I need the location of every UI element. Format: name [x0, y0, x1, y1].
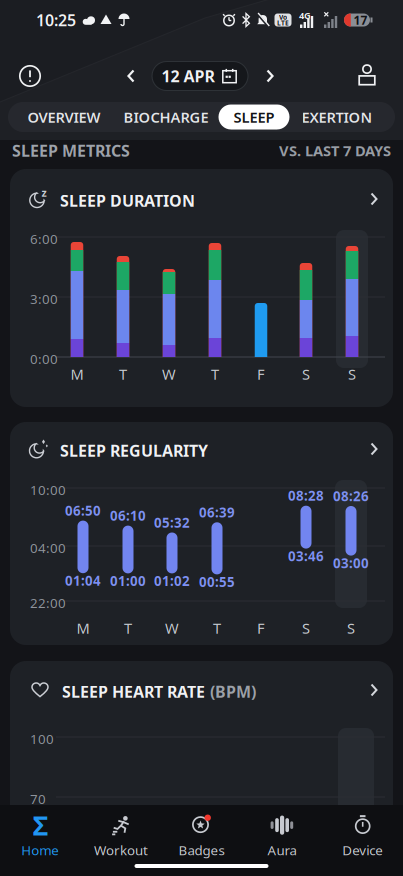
- staticText: Badges: [178, 841, 224, 859]
- staticText: T: [211, 364, 219, 384]
- staticText: SLEEP: [233, 107, 274, 127]
- staticText: 08:28: [288, 487, 324, 504]
- staticText: 22:00: [30, 594, 66, 612]
- staticText: 01:04: [65, 572, 101, 589]
- button[interactable]: Σ: [0, 807, 81, 865]
- staticText: M: [70, 364, 83, 384]
- staticText: 08:26: [333, 487, 369, 505]
- staticText: EXERTION: [301, 107, 372, 127]
- button[interactable]: Workout: [81, 807, 161, 865]
- staticText: VS. LAST 7 DAYS: [279, 141, 391, 160]
- button[interactable]: BIOCHARGE: [115, 102, 217, 132]
- staticText: (BPM): [210, 681, 256, 702]
- staticText: LTE: [277, 18, 289, 27]
- staticText: 03:46: [288, 547, 324, 565]
- staticText: 10:25: [36, 9, 76, 31]
- staticText: SLEEP METRICS: [12, 140, 130, 161]
- button[interactable]: Device: [322, 807, 403, 865]
- staticText: 0:00: [30, 350, 58, 368]
- staticText: 05:32: [154, 514, 190, 531]
- staticText: Device: [342, 841, 383, 859]
- staticText: 70: [30, 790, 46, 808]
- staticText: F: [257, 364, 265, 384]
- staticText: Σ: [33, 807, 48, 843]
- button[interactable]: SLEEP: [218, 104, 289, 129]
- staticText: S: [302, 618, 310, 638]
- button[interactable]: SLEEP REGULARITY: [10, 422, 393, 645]
- button[interactable]: z: [10, 169, 393, 407]
- button[interactable]: Badges: [161, 807, 242, 865]
- staticText: OVERVIEW: [27, 107, 100, 127]
- staticText: T: [119, 364, 127, 384]
- staticText: S: [348, 364, 356, 384]
- staticText: 00:55: [199, 573, 235, 591]
- button[interactable]: 12 APR: [152, 61, 248, 90]
- staticText: Workout: [94, 841, 148, 859]
- staticText: SLEEP DURATION: [60, 190, 195, 211]
- staticText: SLEEP REGULARITY: [60, 440, 208, 461]
- staticText: Home: [21, 841, 59, 859]
- button[interactable]: EXERTION: [289, 102, 385, 132]
- staticText: 4G: [299, 9, 311, 22]
- button[interactable]: Profile: [357, 64, 377, 85]
- staticText: S: [347, 618, 355, 638]
- staticText: 10:00: [30, 481, 66, 499]
- staticText: F: [257, 618, 265, 638]
- staticText: W: [165, 618, 179, 638]
- button[interactable]: SLEEP HEART RATE: [10, 661, 393, 876]
- staticText: BIOCHARGE: [123, 107, 208, 127]
- button[interactable]: Aura: [242, 807, 322, 865]
- staticText: M: [76, 618, 89, 638]
- button[interactable]: OVERVIEW: [14, 102, 114, 132]
- staticText: 06:10: [110, 507, 146, 524]
- staticText: 06:39: [199, 503, 235, 521]
- button[interactable]: Next day: [258, 64, 282, 88]
- staticText: 01:02: [154, 572, 190, 590]
- button[interactable]: Alerts: [19, 65, 41, 87]
- staticText: 100: [30, 730, 54, 748]
- staticText: 06:50: [65, 502, 101, 519]
- button[interactable]: Previous day: [119, 64, 143, 88]
- staticText: 3:00: [30, 290, 58, 308]
- staticText: S: [302, 364, 310, 384]
- staticText: Aura: [268, 841, 297, 859]
- staticText: 6:00: [30, 230, 58, 248]
- staticText: SLEEP HEART RATE: [62, 681, 205, 702]
- staticText: W: [162, 364, 176, 384]
- staticText: T: [213, 618, 221, 638]
- staticText: 01:00: [110, 572, 146, 590]
- staticText: 03:00: [333, 554, 369, 572]
- staticText: 12 APR: [161, 65, 214, 87]
- staticText: Vo: [279, 13, 287, 22]
- staticText: z: [41, 185, 46, 200]
- staticText: 17: [353, 12, 367, 28]
- staticText: T: [124, 618, 132, 638]
- staticText: 04:00: [30, 539, 66, 557]
